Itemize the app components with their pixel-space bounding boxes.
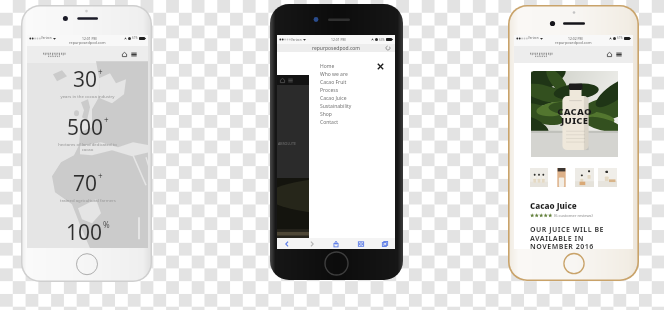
staticText: years in the cocoa industry [60,93,115,99]
button[interactable]: Close menu [377,63,384,70]
staticText: Shop [320,111,332,118]
staticText: 30 [73,65,98,94]
button[interactable]: Back [279,238,295,249]
staticText: virgin cacao juice [70,246,105,248]
staticText: 12:02 PM [568,36,583,41]
button[interactable]: Home [280,78,285,83]
staticText: Sustainability [320,103,352,110]
staticText: OUR JUICE WILL BE AVAILABLE IN NOVEMBER … [530,225,605,249]
staticText: repurposedpod.com [555,40,592,45]
staticText: % [103,219,110,230]
staticText: 61% [132,36,138,40]
staticText: Cacao Juice [320,95,347,102]
staticText: Process [320,87,339,94]
staticText: Contact [320,119,339,126]
staticText: 70 [73,169,98,198]
button[interactable] [575,168,594,187]
button[interactable]: Cacao Juice [320,94,395,102]
staticText: CACAO JUICE [557,105,592,127]
button[interactable]: Cacao Fruit [320,78,395,86]
button[interactable] [530,168,548,187]
staticText: 63% [379,38,385,42]
staticText: Who we are [320,71,348,78]
button[interactable]: Menu [616,52,622,57]
button[interactable]: Menu [288,78,293,83]
button[interactable]: Share [328,238,344,249]
button[interactable]: Contact [320,118,395,126]
button[interactable]: Reload [386,46,390,50]
staticText: + [104,114,109,125]
staticText: Verizon [291,38,302,42]
button[interactable] [598,168,617,187]
staticText: repurposedpod.com [312,45,361,52]
button[interactable] [552,168,571,187]
staticText: 61% [617,36,623,40]
button[interactable]: Forward [304,238,320,249]
staticText: Verizon [41,36,52,40]
staticText: ABSOLUTE [278,141,296,146]
staticText: Cacao Juice [530,200,577,211]
staticText: hectares of land dedicated to cacao [58,141,117,152]
button[interactable]: Sustainability [320,102,395,110]
button[interactable]: Home [320,62,395,70]
staticText: repurposedpod.com [69,40,106,45]
button[interactable]: Shop [122,52,127,57]
staticText: (6 customer reviews) [554,213,593,218]
staticText: 100 [66,218,103,247]
staticText: + [98,170,103,181]
button[interactable]: Shop [607,52,612,57]
staticText: 500 [67,113,104,142]
button[interactable]: Tabs [377,238,393,249]
staticText: Cacao Fruit [320,79,347,86]
button[interactable]: Bookmarks [353,238,369,249]
staticText: Home [320,63,335,70]
staticText: trained agricultural farmers [60,197,116,203]
button[interactable]: Shop [320,110,395,118]
button[interactable]: Process [320,86,395,94]
staticText: 12:01 PM [82,36,97,41]
staticText: 12:01 PM [331,37,346,42]
staticText: Verizon [528,36,539,40]
button[interactable]: Menu [131,52,137,57]
staticText: + [98,66,103,77]
button[interactable]: Who we are [320,70,395,78]
